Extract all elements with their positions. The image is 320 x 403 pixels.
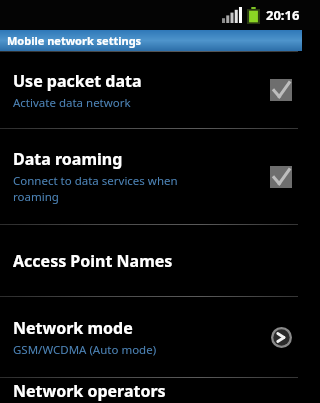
staticText: Network mode bbox=[13, 317, 133, 339]
button[interactable]: Data roaming bbox=[0, 129, 320, 224]
staticText: Use packet data bbox=[13, 70, 142, 92]
staticText: Mobile network settings bbox=[7, 33, 142, 48]
button[interactable]: Use packet data bbox=[0, 52, 320, 128]
button[interactable]: Toggle setting bbox=[270, 79, 292, 101]
staticText: 20:16 bbox=[266, 6, 300, 24]
staticText: Network operators bbox=[13, 380, 166, 402]
staticText: roaming bbox=[13, 189, 59, 205]
button[interactable]: Network operators bbox=[0, 378, 320, 403]
button[interactable]: Open network mode options bbox=[271, 327, 292, 348]
staticText: Data roaming bbox=[13, 148, 123, 170]
staticText: Activate data network bbox=[13, 95, 131, 111]
staticText: GSM/WCDMA (Auto mode) bbox=[13, 342, 157, 358]
button[interactable]: Access Point Names bbox=[0, 225, 320, 296]
button[interactable]: Network mode bbox=[0, 297, 320, 377]
staticText: Access Point Names bbox=[13, 250, 173, 272]
staticText: Connect to data services when bbox=[13, 173, 178, 189]
button[interactable]: Toggle setting bbox=[270, 166, 292, 188]
